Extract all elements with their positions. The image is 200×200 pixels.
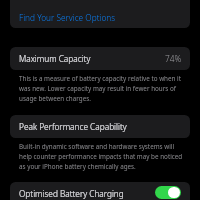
staticText: as your iPhone battery chemically ages. <box>19 162 136 171</box>
staticText: Optimised Battery Charging <box>19 188 124 199</box>
staticText: Built-in dynamic software and hardware s… <box>19 142 175 151</box>
staticText: 74% <box>165 53 182 64</box>
staticText: This is a measure of battery capacity re… <box>19 74 181 83</box>
staticText: was new. Lower capacity may result in fe… <box>19 84 176 93</box>
staticText: Peak Performance Capability <box>19 121 127 132</box>
staticText: Maximum Capacity <box>19 53 91 64</box>
button[interactable]: Optimised Battery Charging <box>10 182 190 200</box>
button[interactable]: Maximum Capacity <box>10 47 190 70</box>
button[interactable]: Peak Performance Capability <box>10 115 190 138</box>
button[interactable]: Optimised Battery Charging toggle <box>155 186 181 199</box>
staticText: help counter performance impacts that ma… <box>19 152 183 161</box>
staticText: usage between charges. <box>19 94 91 103</box>
button[interactable]: Find Your Service Options <box>10 0 190 28</box>
staticText: Find Your Service Options <box>19 12 116 23</box>
